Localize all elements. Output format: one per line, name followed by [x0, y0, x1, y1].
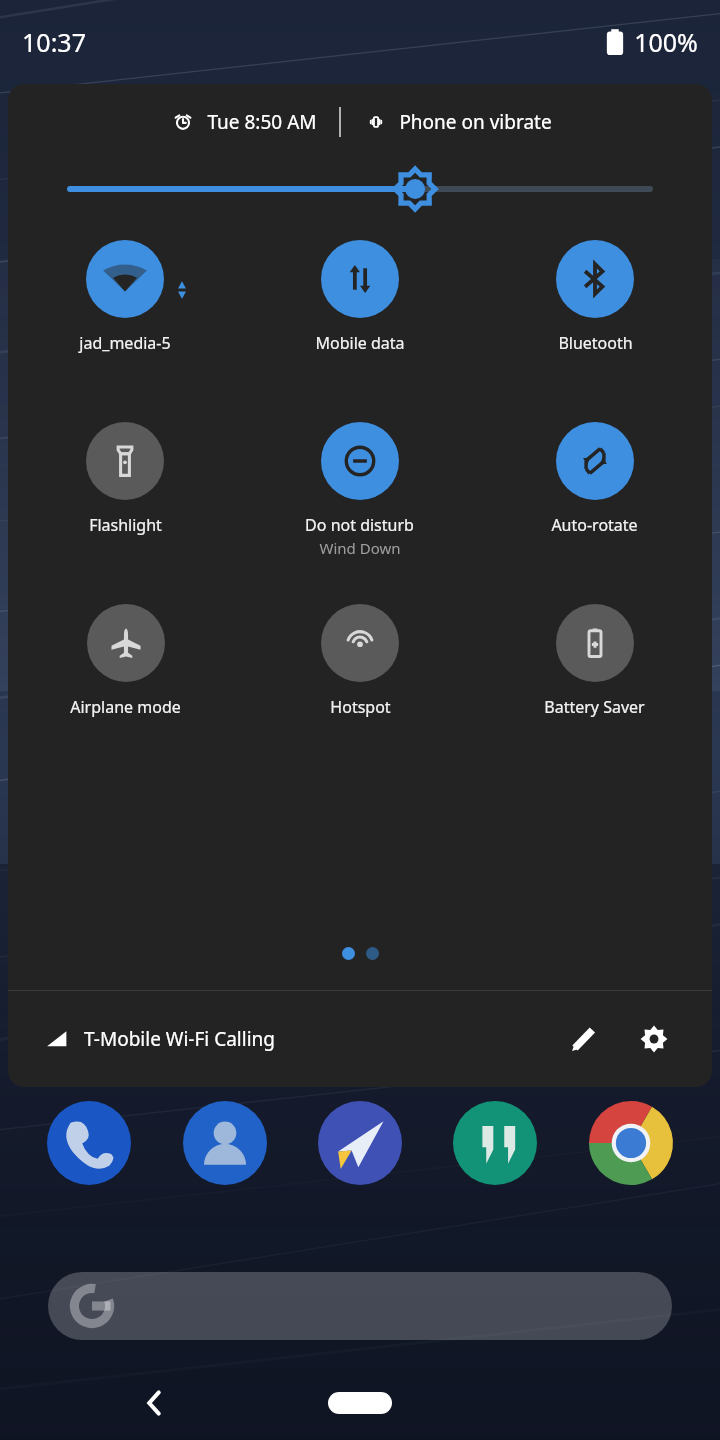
button[interactable]: Search [48, 1272, 672, 1340]
staticText: 10:37 [22, 25, 86, 59]
staticText: Auto-rotate [551, 514, 638, 536]
button[interactable]: Messages [314, 1097, 406, 1189]
button[interactable]: Home [328, 1392, 392, 1414]
button[interactable]: Bluetooth [556, 240, 634, 354]
button[interactable]: Contacts [179, 1097, 271, 1189]
staticText: Hotspot [330, 696, 391, 718]
button[interactable]: Phone [43, 1097, 135, 1189]
staticText: Bluetooth [558, 332, 633, 354]
button[interactable]: Auto-rotate [551, 422, 638, 536]
button[interactable]: Mobile data [315, 240, 405, 354]
staticText: Battery Saver [544, 696, 645, 718]
staticText: jad_media-5 [79, 332, 171, 354]
staticText: 100% [634, 25, 698, 59]
button[interactable]: T-Mobile Wi-Fi Calling [44, 1026, 275, 1052]
staticText: T-Mobile Wi-Fi Calling [84, 1026, 275, 1052]
button[interactable]: jad_media-5 [79, 240, 171, 354]
button[interactable]: Flashlight [86, 422, 164, 536]
button[interactable]: Tue 8:50 AM [169, 108, 317, 136]
staticText: Do not disturb [305, 514, 414, 536]
staticText: Phone on vibrate [399, 109, 552, 135]
staticText: Mobile data [315, 332, 405, 354]
button[interactable]: Edit [562, 1017, 606, 1061]
button[interactable]: Hangouts [449, 1097, 541, 1189]
staticText: Flashlight [89, 514, 162, 536]
button[interactable]: Phone on vibrate [363, 109, 552, 135]
button[interactable]: Brightness [70, 160, 650, 218]
button[interactable]: Airplane mode [70, 604, 181, 718]
button[interactable]: Chrome [585, 1097, 677, 1189]
button[interactable]: Settings [632, 1017, 676, 1061]
staticText: Wind Down [319, 538, 401, 558]
button[interactable]: Battery Saver [544, 604, 645, 718]
button[interactable]: Back [130, 1379, 178, 1427]
button[interactable]: Hotspot [321, 604, 399, 718]
staticText: Airplane mode [70, 696, 181, 718]
staticText: Tue 8:50 AM [207, 109, 317, 135]
button[interactable]: Do not disturb [305, 422, 414, 558]
